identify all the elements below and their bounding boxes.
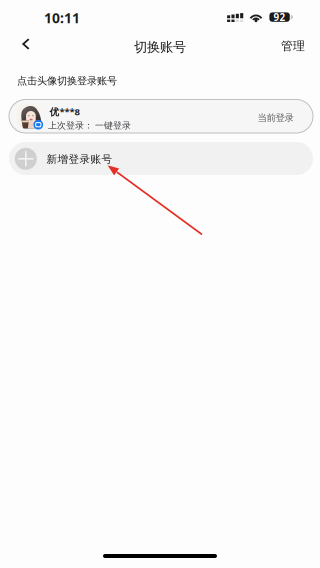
button[interactable]: 管理: [270, 32, 316, 60]
staticText: 优***8: [49, 105, 79, 118]
staticText: 92: [274, 10, 286, 24]
staticText: 管理: [281, 38, 305, 53]
staticText: 切换账号: [134, 39, 186, 55]
staticText: 点击头像切换登录账号: [17, 74, 117, 87]
staticText: 10:11: [44, 8, 80, 27]
button[interactable]: 新增登录账号: [9, 142, 313, 175]
staticText: 上次登录： 一键登录: [48, 120, 131, 131]
staticText: 当前登录: [257, 112, 293, 124]
button[interactable]: 返回: [11, 29, 41, 59]
button[interactable]: 优***8: [9, 99, 313, 133]
staticText: 新增登录账号: [46, 152, 112, 166]
